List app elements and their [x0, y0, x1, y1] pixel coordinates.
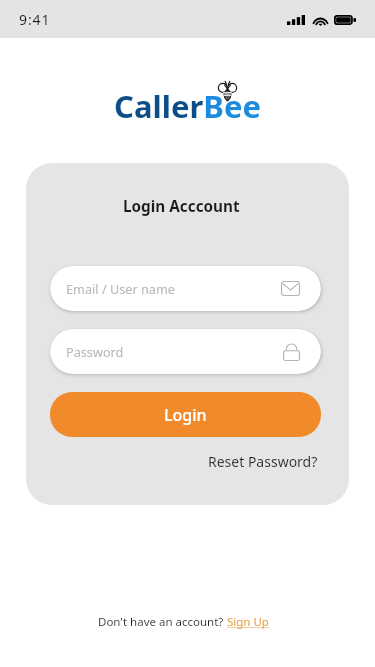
staticText: 9:41: [19, 10, 51, 29]
button[interactable]: Reset Password?: [208, 450, 318, 473]
other: Password: [283, 342, 300, 361]
other: Email: [281, 281, 300, 296]
button[interactable]: Password: [50, 329, 321, 374]
staticText: Don't have an account?: [98, 614, 227, 630]
staticText: CallerBee: [114, 85, 261, 127]
button[interactable]: Login: [50, 392, 321, 437]
staticText: Login: [164, 404, 207, 426]
staticText: Email / User name: [66, 280, 281, 297]
button[interactable]: Sign Up: [227, 614, 269, 630]
staticText: Login Acccount: [123, 196, 240, 217]
button[interactable]: Email / User name: [50, 266, 321, 311]
staticText: Password: [66, 343, 283, 360]
